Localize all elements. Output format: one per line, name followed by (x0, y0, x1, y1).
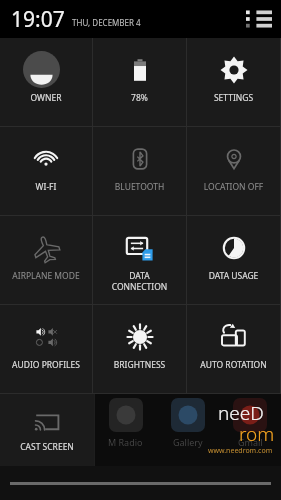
staticText: AIRPLANE MODE (0, 270, 92, 282)
staticText: OWNER (0, 92, 92, 104)
button[interactable]: CAST SCREEN (0, 394, 94, 466)
button[interactable]: Owner profile (0, 38, 92, 126)
staticText: BRIGHTNESS (93, 359, 186, 371)
button[interactable]: Switch to list view (246, 9, 272, 29)
button[interactable]: AUTO ROTATION (187, 305, 280, 393)
staticText: DATA USAGE (187, 270, 280, 282)
staticText: AUTO ROTATION (187, 359, 280, 371)
staticText: BLUETOOTH (93, 181, 186, 193)
button[interactable]: BLUETOOTH (93, 127, 186, 215)
staticText: THU, DECEMBER 4 (72, 17, 141, 28)
button[interactable]: AIRPLANE MODE (0, 216, 92, 304)
staticText: 78% (93, 92, 186, 104)
button[interactable]: LOCATION OFF (187, 127, 280, 215)
staticText: M Radio (108, 436, 143, 448)
staticText: www.needrom.com (208, 446, 273, 456)
staticText: DATA CONNECTION (93, 270, 186, 292)
staticText: LOCATION OFF (187, 181, 280, 193)
button[interactable]: DATA USAGE (187, 216, 280, 304)
button[interactable]: BRIGHTNESS (93, 305, 186, 393)
staticText: Gallery (173, 436, 203, 448)
staticText: 19:07 (11, 5, 65, 34)
button[interactable]: SETTINGS (187, 38, 280, 126)
button[interactable]: AUDIO PROFILES (0, 305, 92, 393)
staticText: Gmail (238, 436, 263, 448)
staticText: SETTINGS (187, 92, 280, 104)
staticText: neeD (218, 400, 264, 426)
staticText: rom (239, 421, 275, 447)
button[interactable]: WI-FI (0, 127, 92, 215)
button[interactable]: DATA CONNECTION (93, 216, 186, 304)
staticText: AUDIO PROFILES (0, 359, 92, 371)
button[interactable]: 78% (93, 38, 186, 126)
staticText: CAST SCREEN (0, 441, 94, 453)
staticText: WI-FI (0, 181, 92, 193)
